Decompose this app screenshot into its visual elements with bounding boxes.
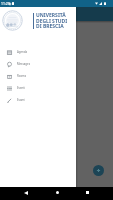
button[interactable]: Agenda (0, 46, 76, 58)
button[interactable]: Home (50, 187, 64, 200)
staticText: UNIVERSITÀ DEGLI STUDI DI BRESCIA (36, 12, 68, 30)
staticText: Agenda (17, 50, 28, 54)
button[interactable]: Messages (0, 58, 76, 70)
staticText: Messages (17, 62, 30, 66)
button[interactable]: Eventi (0, 82, 76, 94)
button[interactable]: Recents (80, 187, 94, 200)
other: University of Brescia logo (2, 10, 23, 31)
button[interactable]: Esami (0, 94, 76, 106)
button[interactable]: Back (19, 187, 33, 200)
staticText: Eventi (17, 86, 26, 90)
staticText: Esami (17, 98, 25, 102)
button[interactable]: Rooms (0, 70, 76, 82)
staticText: 11:29 (1, 1, 10, 6)
staticText: Rooms (17, 74, 27, 78)
button[interactable]: Add (93, 165, 104, 176)
